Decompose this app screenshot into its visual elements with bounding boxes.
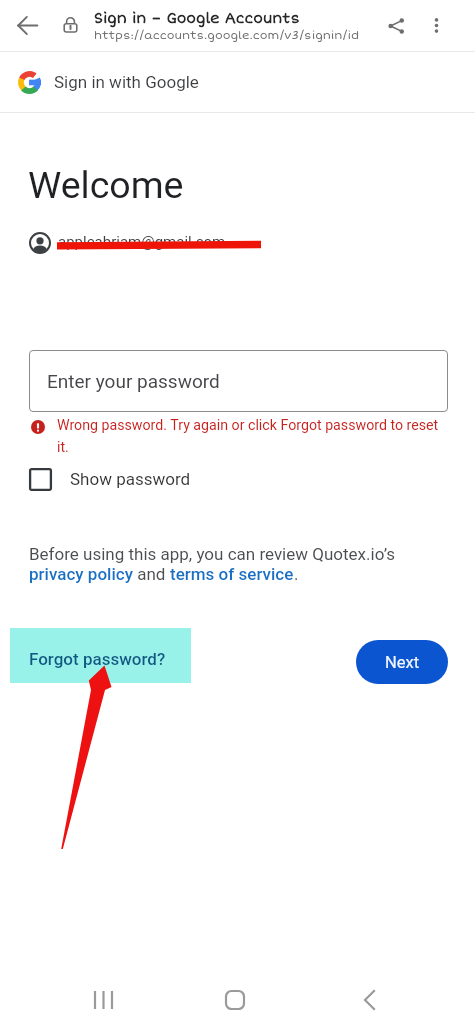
button[interactable]: Next [356, 640, 448, 684]
staticText: and [133, 564, 170, 584]
staticText: Enter your password [47, 370, 220, 392]
staticText: Sign in with Google [54, 72, 199, 92]
staticText: Before using this app, you can review Qu… [29, 544, 395, 564]
button[interactable]: Close tab [0, 0, 54, 51]
button[interactable]: Back [345, 964, 475, 1024]
staticText: Forgot password? [29, 649, 166, 669]
button[interactable]: terms of service [170, 564, 294, 584]
staticText: Welcome [28, 163, 184, 207]
button[interactable]: appleabriam@gmail.com [29, 231, 226, 255]
button[interactable]: Enter your password [29, 350, 448, 412]
button[interactable]: More options [418, 0, 454, 51]
button[interactable]: Recent apps [78, 964, 475, 1024]
staticText: appleabriam@gmail.com [58, 233, 226, 251]
staticText: Wrong password. Try again or click Forgo… [57, 417, 448, 455]
button[interactable]: Forgot password? [10, 628, 191, 683]
button[interactable]: Show password [29, 462, 191, 496]
staticText: https://accounts.google.com/v3/signin/id [94, 28, 360, 42]
staticText: Sign in – Google Accounts [94, 10, 300, 28]
staticText: privacy policy [29, 564, 133, 584]
staticText: terms of service [170, 564, 294, 584]
button[interactable]: privacy policy [29, 564, 133, 584]
staticText: Next [385, 653, 420, 672]
button[interactable]: Home [211, 964, 475, 1024]
staticText: Show password [70, 469, 191, 489]
button[interactable]: Site information [54, 0, 86, 51]
button[interactable]: Share [374, 0, 418, 51]
staticText: . [294, 564, 299, 584]
